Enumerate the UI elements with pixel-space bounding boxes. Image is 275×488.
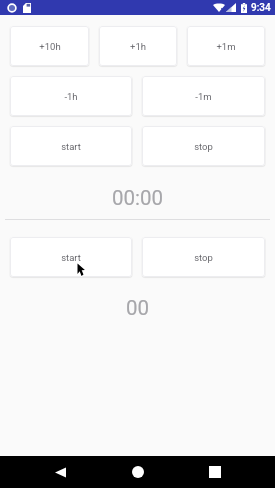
button[interactable]: Recents xyxy=(193,456,237,488)
button[interactable]: +1h xyxy=(99,26,177,66)
staticText: +1h xyxy=(130,41,146,52)
button[interactable]: +1m xyxy=(187,26,265,66)
staticText: 00 xyxy=(0,296,275,320)
staticText: stop xyxy=(194,141,213,152)
button[interactable]: Back xyxy=(38,456,82,488)
button[interactable]: start xyxy=(10,237,132,277)
staticText: 00:00 xyxy=(0,186,275,210)
button[interactable]: +10h xyxy=(10,26,89,66)
button[interactable]: -1h xyxy=(10,76,132,116)
staticText: +1m xyxy=(216,41,236,52)
staticText: +10h xyxy=(39,41,61,52)
staticText: 9:34 xyxy=(251,2,271,14)
button[interactable]: Home xyxy=(116,456,160,488)
button[interactable]: -1m xyxy=(142,76,265,116)
button[interactable]: stop xyxy=(142,237,265,277)
staticText: start xyxy=(61,141,81,152)
staticText: -1m xyxy=(195,91,212,102)
staticText: start xyxy=(61,252,81,263)
staticText: -1h xyxy=(64,91,78,102)
staticText: stop xyxy=(194,252,213,263)
button[interactable]: start xyxy=(10,126,132,166)
button[interactable]: stop xyxy=(142,126,265,166)
